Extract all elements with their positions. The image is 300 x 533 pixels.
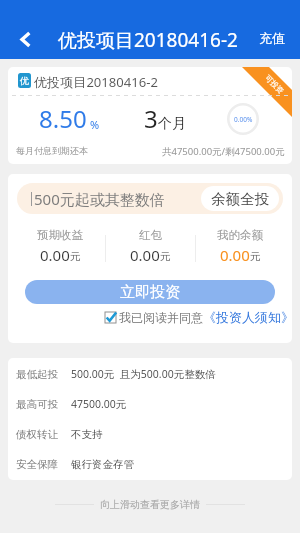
staticText: 最高可投 [16, 398, 58, 411]
staticText: 充值 [259, 30, 285, 46]
button[interactable]: 返回 [0, 20, 50, 59]
staticText: 500.00元 且为500.00元整数倍 [71, 367, 216, 381]
staticText: 元 [70, 250, 81, 263]
staticText: 预期收益 [37, 228, 83, 242]
staticText: 8.50 [39, 102, 87, 135]
staticText: 向上滑动查看更多详情 [100, 498, 200, 511]
staticText: 可投资 [263, 73, 286, 96]
staticText: 个月 [158, 115, 186, 133]
staticText: 优投项目20180416-2 [34, 73, 158, 91]
staticText: 0.00% [234, 115, 253, 124]
staticText: 不支持 [71, 428, 103, 441]
staticText: 立即投资 [120, 283, 180, 302]
staticText: % [90, 117, 100, 132]
staticText: 元 [250, 250, 261, 263]
button[interactable]: 立即投资 [25, 280, 275, 304]
staticText: 红包 [139, 228, 162, 242]
staticText: 元 [160, 250, 171, 263]
button[interactable]: 充值 [259, 30, 285, 46]
staticText: 优 [20, 75, 29, 86]
staticText: 0.00 [130, 245, 160, 264]
staticText: 银行资金存管 [71, 458, 134, 471]
button[interactable]: 我已阅读并同意 [105, 309, 292, 325]
staticText: 3 [144, 102, 158, 135]
staticText: 我的余额 [217, 228, 263, 242]
staticText: 余额全投 [211, 190, 269, 208]
staticText: 0.00 [220, 245, 250, 264]
staticText: 共47500.00元/剩47500.00元 [162, 145, 285, 158]
staticText: 0.00 [40, 245, 70, 264]
staticText: 每月付息到期还本 [16, 145, 88, 156]
staticText: 我已阅读并同意 [119, 310, 203, 325]
button[interactable]: 余额全投 [201, 186, 279, 211]
staticText: 500元起或其整数倍 [34, 189, 165, 209]
staticText: 最低起投 [16, 368, 58, 381]
staticText: 债权转让 [16, 428, 58, 441]
staticText: 优投项目20180416-2 [58, 27, 238, 53]
staticText: 47500.00元 [71, 397, 127, 411]
staticText: 《投资人须知》 [203, 309, 292, 325]
staticText: 安全保障 [16, 458, 58, 471]
